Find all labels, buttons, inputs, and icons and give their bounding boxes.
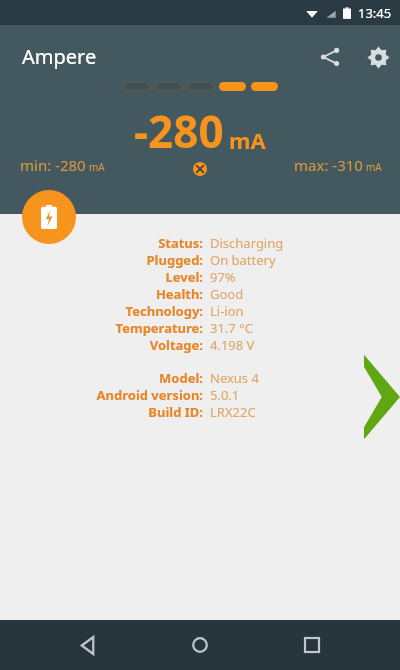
staticText: 97% [210,268,236,285]
staticText: Level: [165,268,203,285]
button[interactable]: Battery [22,190,76,244]
staticText: Model: [159,369,203,386]
staticText: Health: [155,285,203,302]
button[interactable]: Share [308,35,352,79]
staticText: Status: [158,234,203,251]
staticText: Technology: [125,302,203,319]
staticText: mA [366,160,382,174]
staticText: Plugged: [146,251,203,268]
staticText: Ampere [22,43,97,70]
staticText: -280 [134,101,224,161]
button[interactable]: Reset [187,156,213,182]
button[interactable]: Settings [356,35,400,79]
staticText: LRX22C [210,403,256,420]
staticText: Android version: [96,386,203,403]
staticText: 13:45 [358,4,392,22]
staticText: max: -310 [294,155,363,175]
staticText: Li-ion [210,302,244,319]
staticText: min: -280 [20,155,86,175]
button[interactable]: Back [64,621,112,669]
button[interactable]: Next [364,349,400,445]
staticText: Temperature: [115,319,203,336]
staticText: mA [89,160,105,174]
staticText: mA [229,125,266,155]
staticText: On battery [210,251,276,268]
staticText: Nexus 4 [210,369,259,386]
button[interactable]: Home [176,621,224,669]
staticText: 5.0.1 [210,386,240,403]
button[interactable]: Recents [288,621,336,669]
staticText: Voltage: [149,336,203,353]
staticText: Build ID: [148,403,203,420]
staticText: Discharging [210,234,284,251]
staticText: 31.7 °C [210,319,253,336]
staticText: Good [210,285,244,302]
staticText: 4.198 V [210,336,255,353]
